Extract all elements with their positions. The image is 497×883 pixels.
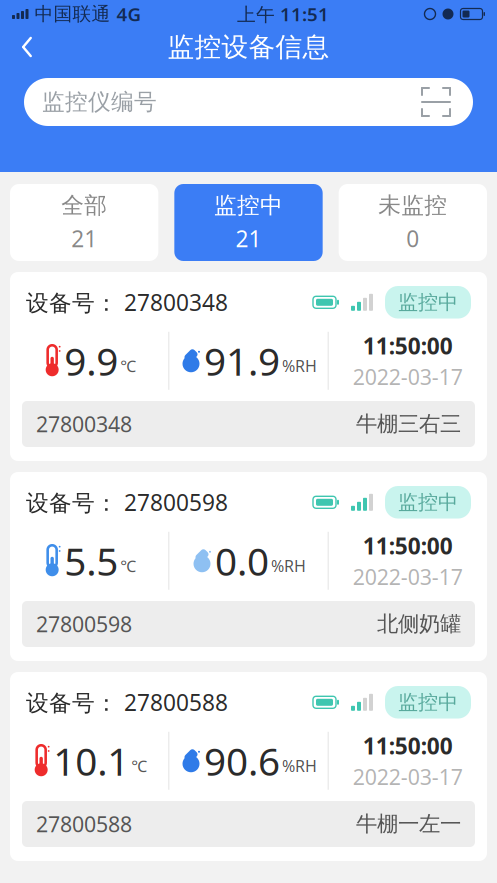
staticText: 2022-03-17 (353, 563, 463, 591)
staticText: 监控中 (214, 191, 283, 219)
button[interactable]: Back (0, 28, 38, 66)
staticText: 未监控 (378, 191, 447, 219)
staticText: 设备号： 27800588 (26, 687, 228, 717)
staticText: 21 (71, 223, 97, 253)
staticText: 27800588 (36, 810, 132, 838)
staticText: 5.5 (64, 535, 118, 586)
staticText: 90.6 (204, 735, 280, 786)
button[interactable]: 监控中 (174, 184, 323, 261)
staticText: ℃ (120, 555, 136, 576)
staticText: 27800348 (36, 410, 132, 438)
staticText: 27800598 (36, 610, 132, 638)
staticText: 4G (116, 2, 141, 26)
staticText: ℃ (131, 755, 147, 776)
staticText: 2022-03-17 (353, 363, 463, 391)
staticText: %RH (282, 755, 317, 776)
staticText: 监控设备信息 (167, 31, 329, 63)
staticText: %RH (271, 555, 306, 576)
button[interactable]: Scan code (417, 83, 455, 121)
staticText: 牛棚一左一 (356, 811, 461, 837)
staticText: 中国联通 (34, 2, 110, 25)
staticText: 21 (235, 223, 261, 253)
staticText: 0 (406, 223, 419, 253)
staticText: 10.1 (53, 735, 129, 786)
staticText: 监控中 (398, 490, 458, 515)
staticText: 0.0 (215, 535, 269, 586)
staticText: 91.9 (204, 335, 280, 386)
staticText: 11:50:00 (363, 331, 453, 361)
staticText: 牛棚三右三 (356, 411, 461, 437)
staticText: 设备号： 27800598 (26, 487, 228, 517)
staticText: 上午 11:51 (237, 2, 329, 26)
staticText: %RH (282, 355, 317, 376)
button[interactable]: 全部 (10, 184, 158, 261)
button[interactable]: 设备号： 27800598 (10, 472, 487, 661)
staticText: 2022-03-17 (353, 763, 463, 791)
staticText: 北侧奶罐 (377, 611, 461, 637)
button[interactable]: 未监控 (339, 184, 487, 261)
staticText: 11:50:00 (363, 731, 453, 761)
staticText: 11:50:00 (363, 531, 453, 561)
staticText: ℃ (120, 355, 136, 376)
staticText: 9.9 (64, 335, 118, 386)
button[interactable]: 设备号： 27800588 (10, 672, 487, 861)
staticText: 监控仪编号 (42, 88, 157, 116)
button[interactable]: 设备号： 27800348 (10, 272, 487, 461)
staticText: 全部 (61, 191, 107, 219)
staticText: 监控中 (398, 690, 458, 715)
staticText: 监控中 (398, 290, 458, 315)
staticText: 设备号： 27800348 (26, 287, 228, 317)
